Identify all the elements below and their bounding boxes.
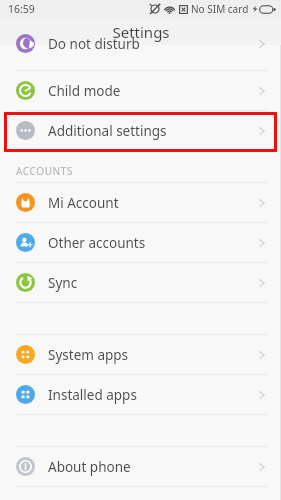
staticText: No SIM card [191, 2, 249, 16]
staticText: Additional settings [48, 122, 167, 140]
button[interactable]: Mi Account [0, 183, 281, 222]
staticText: Do not disturb [48, 35, 140, 53]
staticText: Installed apps [48, 386, 137, 404]
button[interactable]: Do not disturb [0, 45, 281, 70]
staticText: 16:59 [8, 2, 35, 16]
button[interactable]: Installed apps [0, 375, 281, 414]
staticText: About phone [48, 458, 131, 476]
button[interactable]: Additional settings [0, 111, 281, 150]
button[interactable]: Child mode [0, 71, 281, 110]
staticText: Child mode [48, 82, 121, 100]
button[interactable]: About phone [0, 447, 281, 486]
staticText: Sync [48, 274, 78, 292]
button[interactable]: System apps [0, 335, 281, 374]
staticText: ACCOUNTS [16, 164, 73, 178]
staticText: Other accounts [48, 234, 146, 252]
button[interactable]: Sync [0, 263, 281, 302]
staticText: Settings [112, 22, 170, 42]
button[interactable]: Other accounts [0, 223, 281, 262]
staticText: Mi Account [48, 194, 119, 212]
staticText: System apps [48, 346, 129, 364]
